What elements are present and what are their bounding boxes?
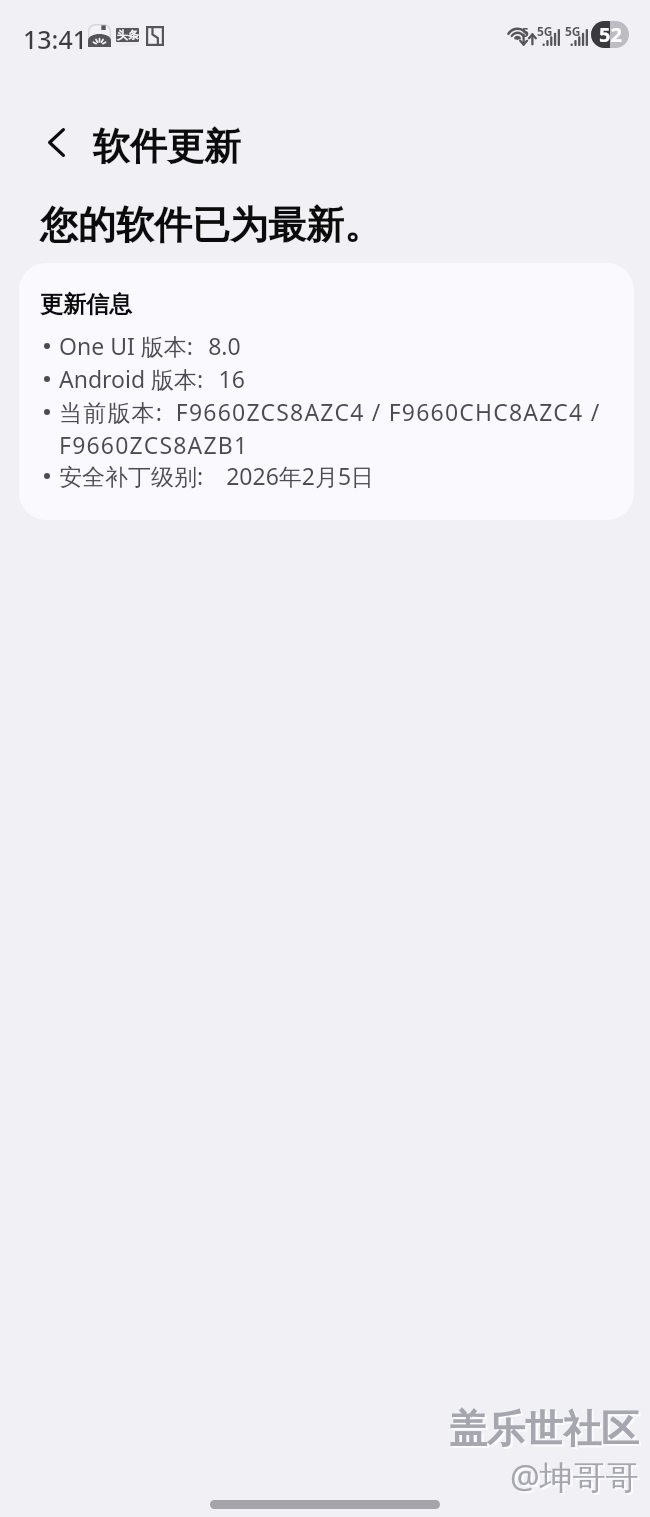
staticText: 52	[599, 21, 622, 48]
staticText: 盖乐世社区	[451, 1407, 641, 1455]
staticText: 更新信息	[40, 290, 132, 319]
staticText: One UI 版本: 8.0	[59, 330, 241, 363]
staticText: 5G	[565, 23, 581, 39]
staticText: 头条	[117, 28, 139, 42]
staticText: Android 版本: 16	[59, 363, 245, 396]
button[interactable]: Back	[30, 116, 82, 168]
staticText: 13:41	[23, 22, 88, 56]
staticText: 当前版本: F9660ZCS8AZC4 / F9660CHC8AZC4 / F9…	[59, 396, 622, 460]
staticText: @坤哥哥	[510, 1454, 639, 1499]
staticText: 安全补丁级别: 2026年2月5日	[59, 460, 375, 493]
staticText: 盖乐世社区	[449, 1405, 639, 1453]
staticText: 5G	[537, 23, 553, 39]
staticText: @坤哥哥	[512, 1456, 641, 1501]
staticText: 您的软件已为最新。	[40, 201, 382, 249]
staticText: 软件更新	[93, 123, 241, 170]
staticText: 5	[522, 24, 529, 40]
